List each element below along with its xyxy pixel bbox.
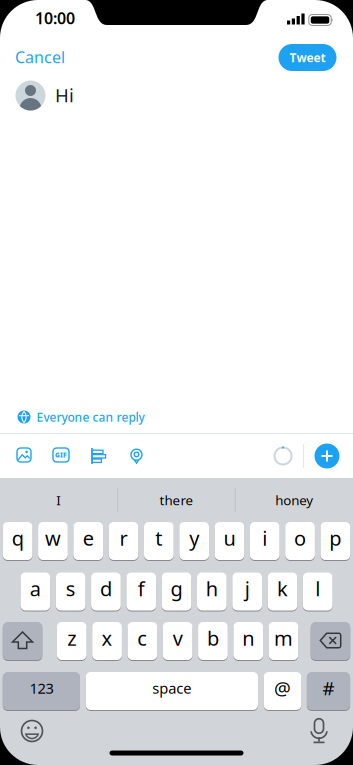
staticText: r	[119, 525, 127, 551]
staticText: k	[277, 575, 288, 602]
button[interactable]: s	[56, 572, 85, 611]
button[interactable]: y	[179, 521, 209, 560]
staticText: d	[100, 575, 112, 602]
staticText: z	[67, 625, 76, 651]
staticText: h	[206, 575, 218, 602]
button[interactable]: c	[127, 621, 157, 660]
button[interactable]: Everyone can reply	[17, 402, 144, 432]
staticText: o	[294, 525, 306, 551]
staticText: s	[66, 575, 76, 602]
staticText: x	[101, 625, 112, 651]
button[interactable]: f	[126, 572, 156, 611]
staticText: Cancel	[15, 46, 65, 68]
staticText: Hi	[55, 83, 74, 107]
staticText: e	[83, 525, 94, 551]
button[interactable]	[304, 716, 334, 746]
staticText: u	[223, 525, 235, 551]
button[interactable]: h	[197, 572, 227, 611]
button[interactable]	[91, 448, 107, 464]
staticText: m	[274, 625, 293, 651]
staticText: #	[322, 676, 334, 700]
button[interactable]: @	[264, 671, 301, 710]
button[interactable]: #	[307, 671, 350, 710]
staticText: 123	[29, 678, 53, 698]
button[interactable]: k	[268, 572, 297, 611]
staticText: q	[12, 525, 24, 551]
staticText: there	[159, 491, 193, 509]
button[interactable]: w	[38, 521, 68, 560]
button[interactable]	[3, 621, 42, 660]
button[interactable]: honey	[239, 482, 349, 518]
button[interactable]: q	[3, 521, 32, 560]
button[interactable]: r	[109, 521, 138, 560]
button[interactable]	[129, 448, 143, 463]
button[interactable]: z	[57, 621, 87, 660]
button[interactable]	[17, 448, 31, 462]
button[interactable]: b	[198, 621, 228, 660]
staticText: t	[155, 525, 162, 551]
staticText: w	[45, 525, 61, 551]
button[interactable]: n	[233, 621, 263, 660]
staticText: a	[30, 575, 41, 602]
button[interactable]: v	[163, 621, 192, 660]
staticText: Everyone can reply	[36, 409, 144, 425]
staticText: l	[315, 575, 320, 602]
button[interactable]: GIF	[53, 448, 69, 462]
staticText: f	[138, 575, 145, 602]
button[interactable]: o	[285, 521, 315, 560]
button[interactable]: there	[121, 482, 231, 518]
button[interactable]: e	[73, 521, 103, 560]
button[interactable]: i	[250, 521, 280, 560]
button[interactable]	[314, 443, 339, 468]
button[interactable]: a	[20, 572, 50, 611]
staticText: space	[152, 678, 191, 698]
button[interactable]: d	[91, 572, 121, 611]
staticText: p	[329, 525, 341, 551]
button[interactable]	[311, 621, 350, 660]
button[interactable]	[17, 716, 47, 746]
staticText: I	[56, 491, 61, 509]
staticText: g	[170, 575, 182, 602]
button[interactable]: g	[162, 572, 191, 611]
staticText: Tweet	[289, 49, 325, 65]
button[interactable]: x	[92, 621, 122, 660]
staticText: GIF	[55, 451, 67, 459]
button[interactable]: u	[215, 521, 244, 560]
button[interactable]: m	[269, 621, 298, 660]
staticText: honey	[275, 491, 313, 509]
button[interactable]: l	[303, 572, 333, 611]
button[interactable]: Cancel	[15, 46, 65, 68]
button[interactable]: 123	[3, 671, 80, 710]
staticText: n	[242, 625, 254, 651]
staticText: i	[262, 525, 267, 551]
staticText: c	[137, 625, 147, 651]
button[interactable]: p	[320, 521, 350, 560]
button[interactable]: I	[4, 482, 114, 518]
button[interactable]: t	[144, 521, 174, 560]
staticText: j	[245, 575, 250, 602]
button[interactable]: j	[232, 572, 262, 611]
staticText: b	[207, 625, 219, 651]
staticText: v	[173, 625, 183, 651]
staticText: y	[189, 525, 199, 551]
button[interactable]: Tweet	[278, 44, 336, 71]
staticText: 10:00	[35, 7, 75, 29]
staticText: @	[274, 676, 291, 700]
button[interactable]: space	[86, 671, 258, 710]
